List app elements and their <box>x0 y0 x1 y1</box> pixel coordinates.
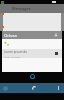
staticText: dolor sit amet <box>4 55 21 58</box>
button[interactable]: Contact photo <box>1 84 9 92</box>
button[interactable]: Oclusa <box>2 31 62 39</box>
staticText: Messages <box>12 6 31 11</box>
button[interactable]: Call <box>30 84 38 92</box>
other: Account <box>54 33 58 37</box>
button[interactable]: Messages <box>0 4 64 13</box>
staticText: Lorem ipsum do <box>4 50 27 54</box>
button[interactable]: Lorem ipsum do <box>2 49 62 58</box>
button[interactable]: More options <box>54 84 62 92</box>
staticText: Oclusa <box>4 33 17 38</box>
